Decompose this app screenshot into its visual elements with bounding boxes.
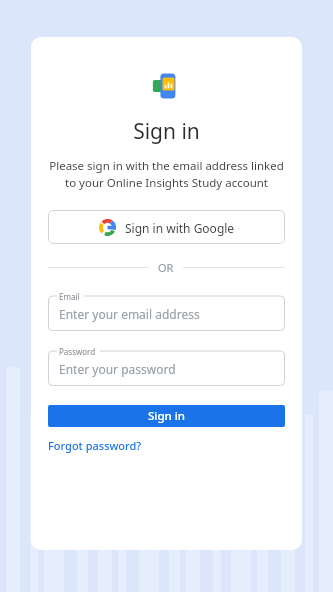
staticText: Sign in bbox=[133, 117, 200, 146]
button[interactable]: Email bbox=[48, 291, 285, 331]
staticText: Sign in with Google bbox=[125, 220, 235, 236]
staticText: Email bbox=[59, 291, 80, 302]
staticText: Forgot password? bbox=[48, 438, 142, 453]
staticText: Sign in bbox=[148, 408, 186, 424]
staticText: OR bbox=[158, 260, 174, 275]
button[interactable]: Sign in bbox=[48, 405, 285, 427]
other: App logo bbox=[152, 71, 182, 101]
staticText: Enter your email address bbox=[59, 306, 200, 322]
staticText: Please sign in with the email address li… bbox=[48, 158, 285, 191]
button[interactable]: Sign in with Google bbox=[48, 210, 285, 244]
staticText: Password bbox=[59, 346, 96, 357]
button[interactable]: Password bbox=[48, 346, 285, 386]
button[interactable]: Forgot password? bbox=[48, 438, 285, 453]
staticText: Enter your password bbox=[59, 361, 176, 377]
